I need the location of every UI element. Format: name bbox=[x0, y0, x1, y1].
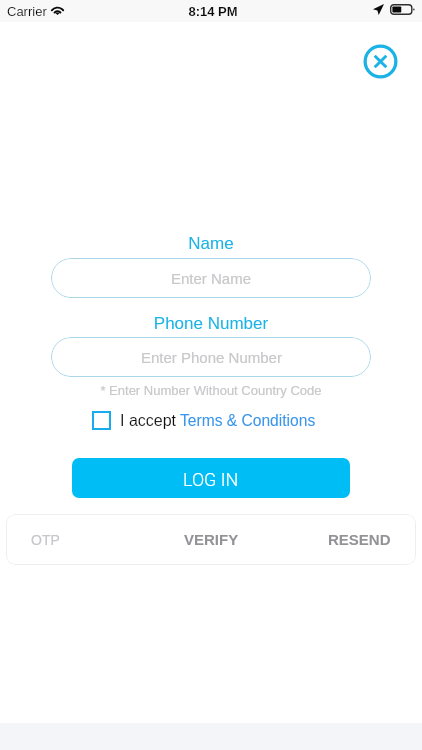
button[interactable]: Accept terms checkbox bbox=[92, 411, 111, 430]
staticText: Carrier bbox=[7, 4, 47, 19]
staticText: Phone Number bbox=[0, 314, 422, 333]
staticText: OTP bbox=[31, 532, 60, 548]
button[interactable]: Close bbox=[362, 43, 399, 80]
staticText: 8:14 PM bbox=[2, 4, 422, 19]
button[interactable]: RESEND bbox=[315, 514, 403, 565]
staticText: VERIFY bbox=[184, 531, 239, 548]
staticText: Name bbox=[0, 234, 422, 253]
button[interactable]: OTP bbox=[31, 514, 121, 565]
staticText: LOG IN bbox=[183, 469, 239, 490]
staticText: I accept bbox=[120, 412, 177, 430]
staticText: * Enter Number Without Country Code bbox=[0, 383, 422, 398]
button[interactable]: LOG IN bbox=[72, 458, 350, 498]
staticText: RESEND bbox=[328, 531, 391, 548]
staticText: Enter Name bbox=[171, 270, 252, 287]
staticText: Enter Phone Number bbox=[141, 349, 282, 366]
button[interactable]: VERIFY bbox=[168, 514, 254, 565]
button[interactable]: Enter Phone Number bbox=[51, 337, 371, 377]
button[interactable]: Accept terms checkbox bbox=[92, 411, 316, 430]
button[interactable]: Enter Name bbox=[51, 258, 371, 298]
button[interactable]: Terms & Conditions bbox=[180, 412, 316, 429]
